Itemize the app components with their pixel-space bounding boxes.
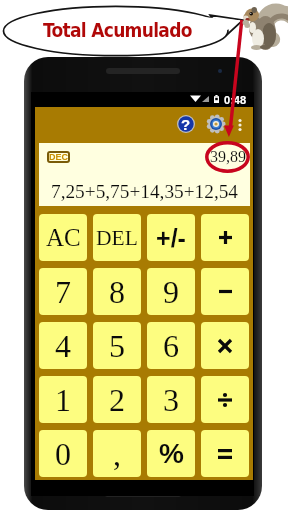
staticText: 2: [109, 382, 125, 417]
staticText: Total Acumulado: [43, 19, 192, 41]
button[interactable]: AC: [39, 214, 87, 261]
button[interactable]: +/-: [147, 214, 195, 261]
button[interactable]: More options: [234, 113, 246, 137]
button[interactable]: 2: [93, 376, 141, 423]
button[interactable]: [201, 268, 249, 315]
staticText: ?: [181, 116, 191, 133]
staticText: DEL: [96, 226, 138, 250]
staticText: 4: [55, 328, 71, 363]
staticText: 6: [163, 328, 179, 363]
staticText: AC: [46, 224, 81, 252]
staticText: 3: [163, 382, 179, 417]
button[interactable]: Help: [177, 115, 195, 133]
staticText: ,: [113, 436, 121, 471]
button[interactable]: [201, 376, 249, 423]
button[interactable]: %: [147, 430, 195, 477]
staticText: 8: [109, 274, 125, 309]
button[interactable]: Settings: [207, 115, 225, 133]
button[interactable]: 4: [39, 322, 87, 369]
staticText: 0:48: [224, 94, 247, 106]
staticText: 7: [55, 274, 71, 309]
staticText: +/-: [156, 224, 186, 252]
staticText: 0: [55, 436, 71, 471]
button[interactable]: ,: [93, 430, 141, 477]
button[interactable]: 1: [39, 376, 87, 423]
staticText: DEC: [49, 152, 69, 162]
button[interactable]: 7: [39, 268, 87, 315]
button[interactable]: 5: [93, 322, 141, 369]
staticText: 1: [55, 382, 71, 417]
staticText: 5: [109, 328, 125, 363]
staticText: 9: [163, 274, 179, 309]
button[interactable]: [201, 322, 249, 369]
staticText: %: [159, 438, 184, 469]
button[interactable]: 0: [39, 430, 87, 477]
staticText: 39,89: [210, 148, 246, 166]
button[interactable]: DEL: [93, 214, 141, 261]
button[interactable]: 3: [147, 376, 195, 423]
button[interactable]: [201, 214, 249, 261]
staticText: 7,25+5,75+14,35+12,54: [51, 181, 239, 202]
button[interactable]: 9: [147, 268, 195, 315]
button[interactable]: 6: [147, 322, 195, 369]
button[interactable]: 8: [93, 268, 141, 315]
button[interactable]: [201, 430, 249, 477]
